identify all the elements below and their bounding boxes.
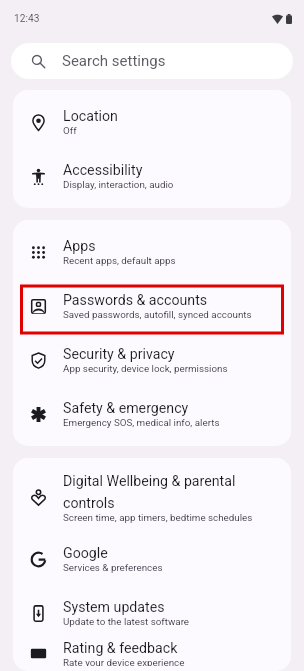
staticText: 12:43 xyxy=(14,13,40,25)
button[interactable]: Security & privacy xyxy=(13,333,291,387)
button[interactable]: Location xyxy=(13,95,291,149)
staticText: Saved passwords, autofill, synced accoun… xyxy=(63,309,252,320)
staticText: App security, device lock, permissions xyxy=(63,363,228,374)
staticText: Safety & emergency xyxy=(63,400,189,417)
staticText: Rate your device experience xyxy=(63,657,185,666)
button[interactable]: Search settings xyxy=(11,43,293,79)
staticText: Display, interaction, audio xyxy=(63,179,174,190)
button[interactable]: Passwords & accounts xyxy=(13,279,291,333)
staticText: Location xyxy=(63,108,118,125)
button[interactable]: Google xyxy=(13,532,291,586)
staticText: Apps xyxy=(63,238,96,255)
button[interactable]: System updates xyxy=(13,586,291,640)
button[interactable]: Accessibility xyxy=(13,149,291,203)
staticText: Google xyxy=(63,545,108,562)
button[interactable]: Safety & emergency xyxy=(13,387,291,441)
staticText: Search settings xyxy=(62,52,166,70)
staticText: System updates xyxy=(63,599,165,616)
staticText: Services & preferences xyxy=(63,562,163,573)
button[interactable]: Apps xyxy=(13,225,291,279)
staticText: Passwords & accounts xyxy=(63,292,208,309)
button[interactable]: Digital Wellbeing & parental controls xyxy=(13,463,291,532)
staticText: Update to the latest software xyxy=(63,616,190,627)
staticText: Emergency SOS, medical info, alerts xyxy=(63,417,220,428)
button[interactable]: Rating & feedback xyxy=(13,640,291,666)
staticText: Digital Wellbeing & parental controls xyxy=(63,473,277,512)
staticText: Accessibility xyxy=(63,162,143,179)
staticText: Rating & feedback xyxy=(63,640,178,657)
staticText: Security & privacy xyxy=(63,346,175,363)
staticText: Screen time, app timers, bedtime schedul… xyxy=(63,512,253,523)
staticText: Recent apps, default apps xyxy=(63,255,176,266)
staticText: Off xyxy=(63,125,77,136)
